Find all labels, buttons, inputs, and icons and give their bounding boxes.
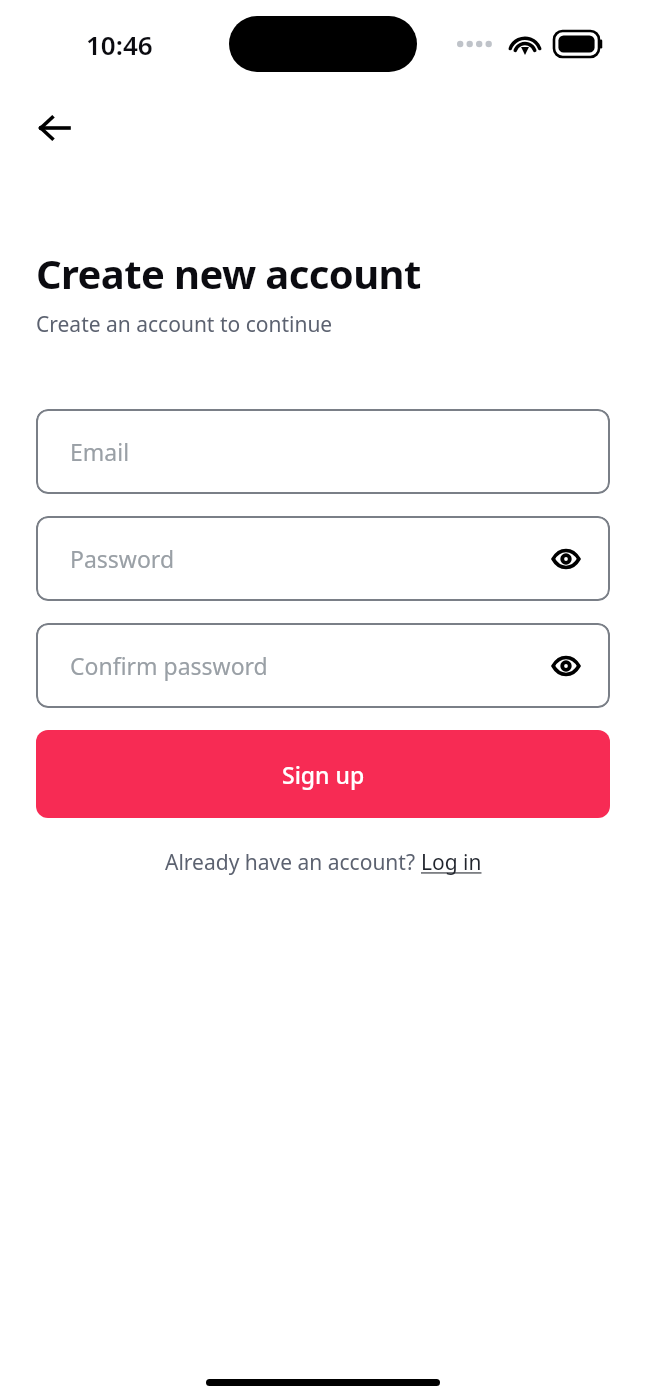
staticText: Log in (421, 848, 482, 877)
button[interactable]: Email (36, 409, 610, 494)
staticText: Sign up (282, 759, 365, 790)
staticText: Confirm password (70, 650, 268, 681)
button[interactable]: Log in (421, 848, 482, 877)
button[interactable]: Toggle password visibility (544, 537, 588, 581)
staticText: Already have an account? (165, 848, 421, 877)
staticText: Password (70, 543, 175, 574)
button[interactable]: Sign up (36, 730, 610, 818)
button[interactable]: Password (36, 516, 610, 601)
staticText: 10:46 (86, 27, 153, 62)
button[interactable]: Confirm password (36, 623, 610, 708)
staticText: Email (70, 436, 130, 467)
button[interactable]: Back (26, 100, 82, 156)
staticText: Create new account (36, 246, 421, 300)
staticText: Create an account to continue (36, 310, 333, 339)
button[interactable]: Toggle password visibility (544, 644, 588, 688)
